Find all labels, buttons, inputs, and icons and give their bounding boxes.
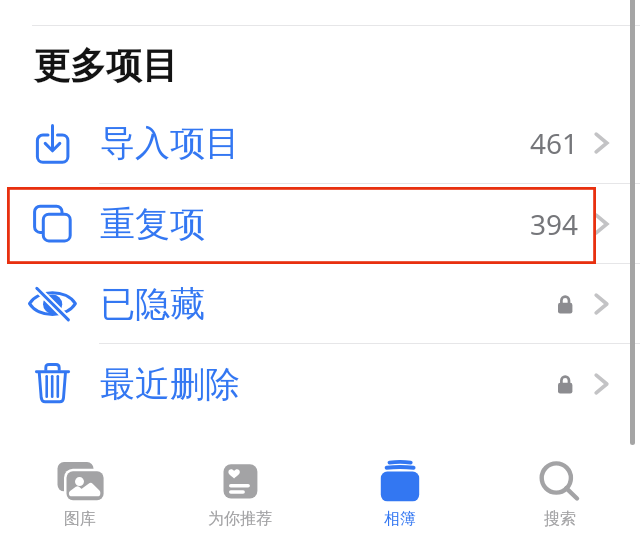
- button[interactable]: Albums: [320, 445, 480, 545]
- staticText: 394: [530, 205, 579, 243]
- button[interactable]: Gallery: [0, 445, 160, 545]
- staticText: 搜索: [544, 509, 576, 529]
- staticText: 461: [530, 124, 579, 162]
- staticText: 相簿: [384, 509, 416, 529]
- staticText: 更多项目: [34, 43, 178, 88]
- button[interactable]: Search: [480, 445, 640, 545]
- staticText: 为你推荐: [208, 509, 272, 529]
- staticText: 图库: [64, 509, 96, 529]
- staticText: 最近删除: [100, 362, 240, 406]
- button[interactable]: 重复项: [0, 184, 640, 264]
- staticText: 已隐藏: [100, 282, 205, 326]
- staticText: 导入项目: [100, 121, 240, 165]
- button[interactable]: 已隐藏: [0, 264, 640, 343]
- button[interactable]: 导入项目: [0, 103, 640, 183]
- button[interactable]: 最近删除: [0, 343, 640, 425]
- button[interactable]: For you: [160, 445, 320, 545]
- staticText: 重复项: [100, 202, 205, 246]
